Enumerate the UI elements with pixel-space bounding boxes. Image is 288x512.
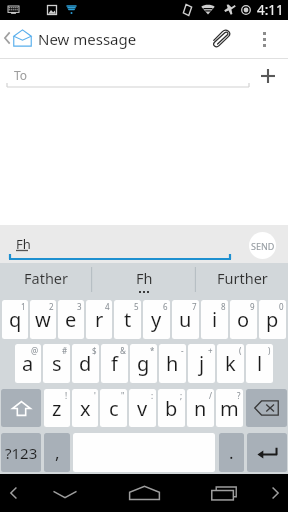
button[interactable]: e — [58, 300, 84, 339]
button[interactable]: Fh — [92, 263, 196, 297]
button[interactable]: u — [172, 300, 199, 339]
staticText: m — [220, 395, 239, 422]
button[interactable]: y — [143, 300, 170, 339]
staticText: k — [225, 350, 236, 377]
staticText: d — [79, 350, 92, 377]
staticText: . — [229, 441, 234, 464]
button[interactable]: w — [30, 300, 56, 339]
staticText: SEND — [251, 240, 275, 252]
staticText: Further — [217, 268, 268, 288]
button[interactable]: ?123 — [1, 433, 41, 472]
staticText: 2 — [49, 301, 54, 312]
button[interactable]: r — [86, 300, 112, 339]
button[interactable]: Fh — [16, 235, 31, 253]
staticText: 4 — [105, 301, 110, 312]
staticText: 6 — [163, 301, 168, 312]
staticText: s — [52, 350, 62, 377]
button[interactable]: z — [44, 389, 70, 427]
staticText: q — [9, 306, 22, 333]
staticText: f — [111, 350, 118, 377]
button[interactable]: g — [130, 344, 157, 383]
button[interactable]: l — [246, 344, 273, 383]
button[interactable]: v — [129, 389, 156, 427]
button[interactable]: m — [216, 389, 243, 427]
staticText: a — [22, 350, 34, 377]
staticText: 4:11 — [257, 1, 284, 19]
staticText: Fh — [16, 235, 31, 253]
button[interactable]: i — [201, 300, 228, 339]
staticText: New message — [38, 29, 137, 49]
staticText: p — [266, 306, 279, 333]
button[interactable]: Back — [0, 474, 30, 512]
button[interactable]: SEND — [249, 232, 276, 259]
staticText: 9 — [250, 301, 255, 312]
button[interactable]: Navigate up — [0, 20, 36, 58]
button[interactable]: q — [2, 300, 28, 339]
staticText: j — [199, 350, 205, 377]
button[interactable]: To — [0, 59, 288, 95]
staticText: 0 — [279, 301, 284, 312]
staticText: ' — [94, 390, 96, 401]
staticText: ( — [239, 345, 242, 356]
button[interactable]: More options — [248, 20, 284, 58]
button[interactable]: Shift — [1, 389, 41, 427]
button[interactable]: Home — [124, 474, 165, 512]
staticText: e — [65, 306, 77, 333]
staticText: v — [137, 395, 148, 422]
button[interactable]: Period — [219, 433, 244, 472]
button[interactable]: Comma — [44, 433, 70, 472]
staticText: b — [165, 395, 178, 422]
button[interactable]: f — [101, 344, 128, 383]
button[interactable]: Backspace — [246, 389, 287, 427]
staticText: $ — [92, 345, 97, 356]
button[interactable]: h — [159, 344, 186, 383]
staticText: y — [151, 306, 162, 333]
staticText: h — [166, 350, 179, 377]
staticText: 5 — [134, 301, 139, 312]
staticText: 3 — [77, 301, 82, 312]
staticText: z — [52, 395, 62, 422]
button[interactable]: a — [15, 344, 41, 383]
button[interactable]: p — [259, 300, 286, 339]
staticText: ?123 — [5, 443, 38, 463]
button[interactable]: c — [100, 389, 127, 427]
staticText: " — [121, 390, 125, 401]
button[interactable]: j — [188, 344, 215, 383]
staticText: t — [124, 306, 132, 333]
staticText: x — [80, 395, 91, 422]
staticText: ) — [268, 345, 271, 356]
button[interactable]: x — [72, 389, 98, 427]
button[interactable]: Attach file — [203, 20, 239, 58]
staticText: - — [181, 345, 184, 356]
button[interactable]: Further — [196, 263, 288, 297]
button[interactable]: Hide keyboard — [45, 474, 85, 512]
button[interactable]: d — [72, 344, 99, 383]
staticText: o — [237, 306, 250, 333]
staticText: ? — [237, 390, 241, 401]
staticText: & — [120, 345, 126, 356]
button[interactable]: o — [230, 300, 257, 339]
button[interactable]: t — [114, 300, 141, 339]
staticText: , — [55, 441, 60, 464]
staticText: To — [14, 67, 28, 83]
button[interactable]: Forward — [258, 474, 288, 512]
staticText: Fh — [136, 268, 153, 288]
staticText: n — [194, 395, 207, 422]
button[interactable]: k — [217, 344, 244, 383]
button[interactable]: Father — [0, 263, 92, 297]
staticText: # — [62, 345, 68, 356]
staticText: 8 — [221, 301, 226, 312]
button[interactable]: Enter — [247, 433, 287, 472]
staticText: l — [257, 350, 263, 377]
staticText: 7 — [192, 301, 197, 312]
button[interactable]: Recent apps — [203, 474, 243, 512]
button[interactable]: s — [43, 344, 70, 383]
staticText: + — [208, 345, 213, 356]
button[interactable]: Add recipient — [254, 62, 282, 90]
button[interactable]: n — [187, 389, 214, 427]
staticText: g — [137, 350, 150, 377]
staticText: i — [212, 306, 218, 333]
button[interactable]: b — [158, 389, 185, 427]
